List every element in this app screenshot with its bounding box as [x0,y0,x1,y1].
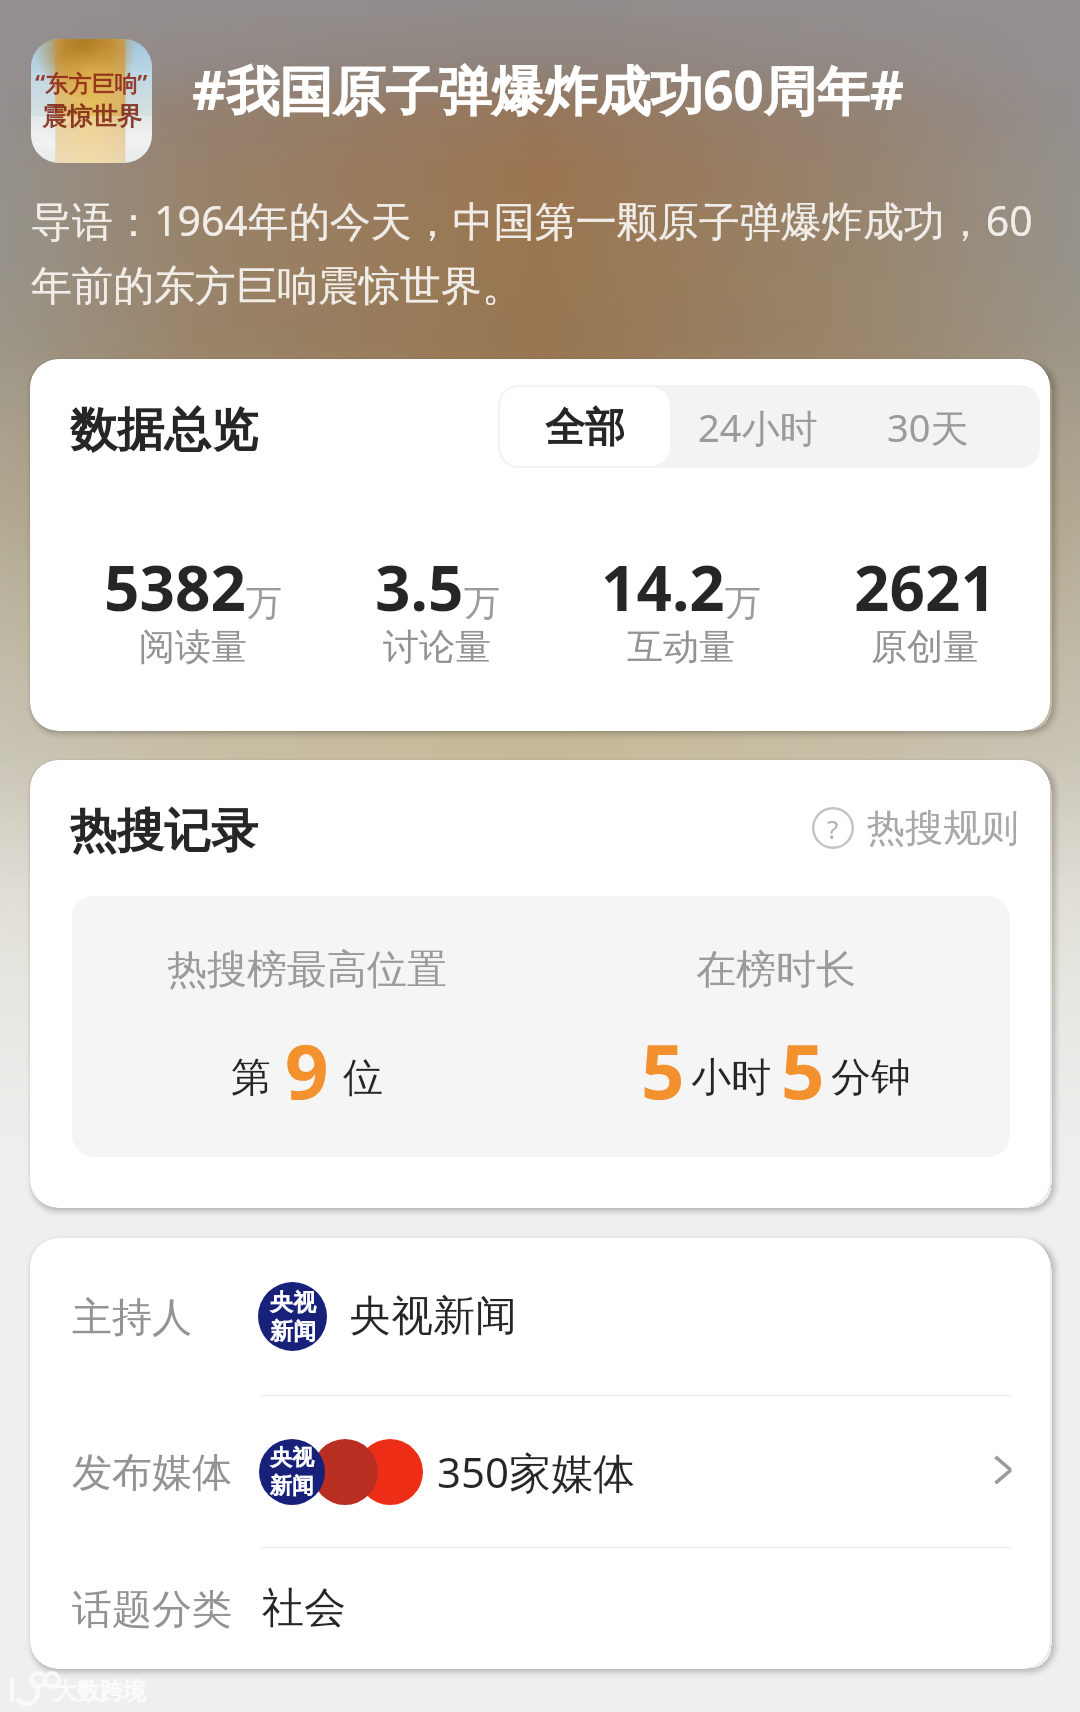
staticText: 新闻 [270,1317,316,1346]
staticText: 万 [464,580,500,625]
staticText: 原创量 [871,624,979,669]
staticText: 30天 [887,401,969,453]
button[interactable]: 发布媒体 [30,1396,1050,1547]
staticText: 分钟 [831,1052,911,1102]
staticText: 全部 [545,402,625,452]
staticText: 14.2 [601,545,725,629]
button[interactable]: 话题分类 [30,1548,1050,1669]
other: Open media list [988,1455,1018,1485]
button[interactable]: 24小时 [672,387,844,466]
staticText: 社会 [262,1582,346,1635]
staticText: 热搜记录 [70,802,258,861]
staticText: 万 [725,580,761,625]
staticText: #我国原子弹爆炸成功60周年# [192,53,905,125]
staticText: 2621 [854,545,996,629]
staticText: “东方巨响” [35,67,148,98]
staticText: 24小时 [698,401,818,453]
staticText: 小时 [691,1052,771,1102]
staticText: 数据总览 [70,401,258,460]
staticText: 位 [343,1052,383,1102]
staticText: 主持人 [72,1292,192,1342]
staticText: 导语：1964年的今天，中国第一颗原子弹爆炸成功，60年前的东方巨响震惊世界。 [31,192,1061,312]
staticText: 热搜规则 [867,804,1019,852]
staticText: 阅读量 [139,624,247,669]
button[interactable]: Topic cover image [31,39,152,163]
staticText: 350家媒体 [437,1443,636,1500]
staticText: 震惊世界 [42,101,142,132]
staticText: ? [827,811,839,846]
staticText: 热搜榜最高位置 [167,944,447,994]
staticText: 发布媒体 [72,1447,232,1497]
staticText: 9 [285,1018,329,1122]
staticText: 大数跨境 [54,1677,146,1706]
staticText: 讨论量 [383,624,491,669]
staticText: 5 [781,1018,825,1122]
button[interactable]: 全部 [500,387,670,466]
staticText: 3.5 [375,545,464,629]
staticText: 第 [231,1052,271,1102]
staticText: 央视 [270,1444,314,1472]
staticText: 在榜时长 [696,944,856,994]
staticText: 话题分类 [72,1584,232,1634]
staticText: 万 [246,580,282,625]
button[interactable]: ? [810,800,1019,856]
button[interactable]: 30天 [848,387,1008,466]
staticText: 5 [641,1018,685,1122]
staticText: 央视 [270,1288,316,1317]
staticText: 新闻 [270,1472,314,1500]
staticText: 5382 [104,545,246,629]
staticText: 央视新闻 [349,1290,517,1343]
staticText: 互动量 [627,624,735,669]
button[interactable]: 主持人 [30,1238,1050,1395]
